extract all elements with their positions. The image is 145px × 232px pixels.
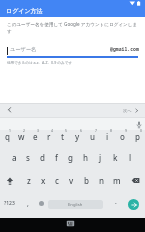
- button[interactable]: [128, 199, 139, 210]
- staticText: d: [40, 152, 45, 163]
- button[interactable]: English: [48, 200, 103, 209]
- staticText: ログイン方法: [6, 7, 43, 15]
- staticText: 6: [80, 128, 82, 133]
- staticText: p: [135, 131, 140, 142]
- staticText: 8: [110, 128, 112, 133]
- staticText: 5: [65, 128, 67, 133]
- button[interactable]: [66, 220, 75, 227]
- button[interactable]: 7: [85, 127, 100, 146]
- button[interactable]: 6: [70, 127, 85, 146]
- staticText: このユーザー名を使用して Google アカウントにログインしま: [7, 21, 138, 27]
- staticText: z: [27, 175, 31, 186]
- staticText: o: [120, 131, 125, 142]
- button[interactable]: s: [21, 148, 35, 167]
- staticText: 0: [140, 128, 142, 133]
- staticText: 3: [37, 128, 39, 133]
- staticText: h: [83, 152, 89, 163]
- button[interactable]: l: [123, 148, 138, 167]
- button[interactable]: m: [109, 171, 124, 190]
- button[interactable]: v: [64, 171, 79, 190]
- staticText: c: [55, 175, 59, 186]
- button[interactable]: 8: [100, 127, 115, 146]
- button[interactable]: 2: [14, 127, 28, 146]
- button[interactable]: ?123: [4, 200, 15, 207]
- staticText: 7: [95, 128, 97, 133]
- staticText: b: [84, 175, 89, 186]
- button[interactable]: f: [49, 148, 63, 167]
- button[interactable]: .: [115, 197, 117, 206]
- button[interactable]: [125, 171, 145, 190]
- button[interactable]: 0: [130, 127, 145, 146]
- staticText: r: [47, 131, 51, 142]
- button[interactable]: j: [93, 148, 108, 167]
- staticText: w: [18, 131, 25, 142]
- staticText: t: [61, 131, 65, 142]
- button[interactable]: h: [78, 148, 93, 167]
- staticText: f: [55, 152, 58, 163]
- staticText: n: [99, 175, 105, 186]
- staticText: 9: [125, 128, 127, 133]
- button[interactable]: 1: [0, 127, 14, 146]
- button[interactable]: k: [108, 148, 123, 167]
- staticText: 1: [9, 128, 11, 133]
- button[interactable]: [0, 103, 14, 117]
- button[interactable]: x: [36, 171, 50, 190]
- staticText: 次へ: [123, 108, 132, 113]
- staticText: ユーザー名: [10, 46, 37, 53]
- button[interactable]: ,: [27, 199, 29, 208]
- staticText: e: [33, 131, 38, 142]
- button[interactable]: [0, 171, 20, 190]
- button[interactable]: g: [63, 148, 78, 167]
- staticText: l: [129, 152, 132, 163]
- staticText: y: [75, 131, 80, 142]
- staticText: i: [106, 131, 109, 142]
- staticText: s: [26, 152, 30, 163]
- staticText: す: [7, 29, 12, 35]
- button[interactable]: a: [7, 148, 21, 167]
- button[interactable]: n: [94, 171, 109, 190]
- button[interactable]: ユーザー名: [0, 45, 145, 58]
- button[interactable]: 9: [115, 127, 130, 146]
- staticText: 4: [51, 128, 53, 133]
- button[interactable]: 次へ: [123, 108, 139, 113]
- button[interactable]: d: [35, 148, 49, 167]
- staticText: @gmail.com: [110, 46, 139, 53]
- button[interactable]: [39, 201, 44, 206]
- staticText: u: [90, 131, 96, 142]
- button[interactable]: z: [22, 171, 36, 190]
- button[interactable]: 5: [56, 127, 70, 146]
- staticText: a: [12, 152, 17, 163]
- staticText: m: [113, 175, 121, 186]
- staticText: x: [41, 175, 46, 186]
- staticText: 2: [23, 128, 25, 133]
- staticText: k: [113, 152, 118, 163]
- staticText: 使用できるのは a-z、A-Z、0-9 のみです: [7, 60, 72, 65]
- staticText: English: [68, 202, 83, 208]
- staticText: g: [68, 152, 73, 163]
- button[interactable]: c: [50, 171, 64, 190]
- button[interactable]: 4: [42, 127, 56, 146]
- button[interactable]: 3: [28, 127, 42, 146]
- button[interactable]: b: [79, 171, 94, 190]
- staticText: q: [5, 131, 10, 142]
- staticText: v: [69, 175, 74, 186]
- staticText: j: [99, 152, 102, 163]
